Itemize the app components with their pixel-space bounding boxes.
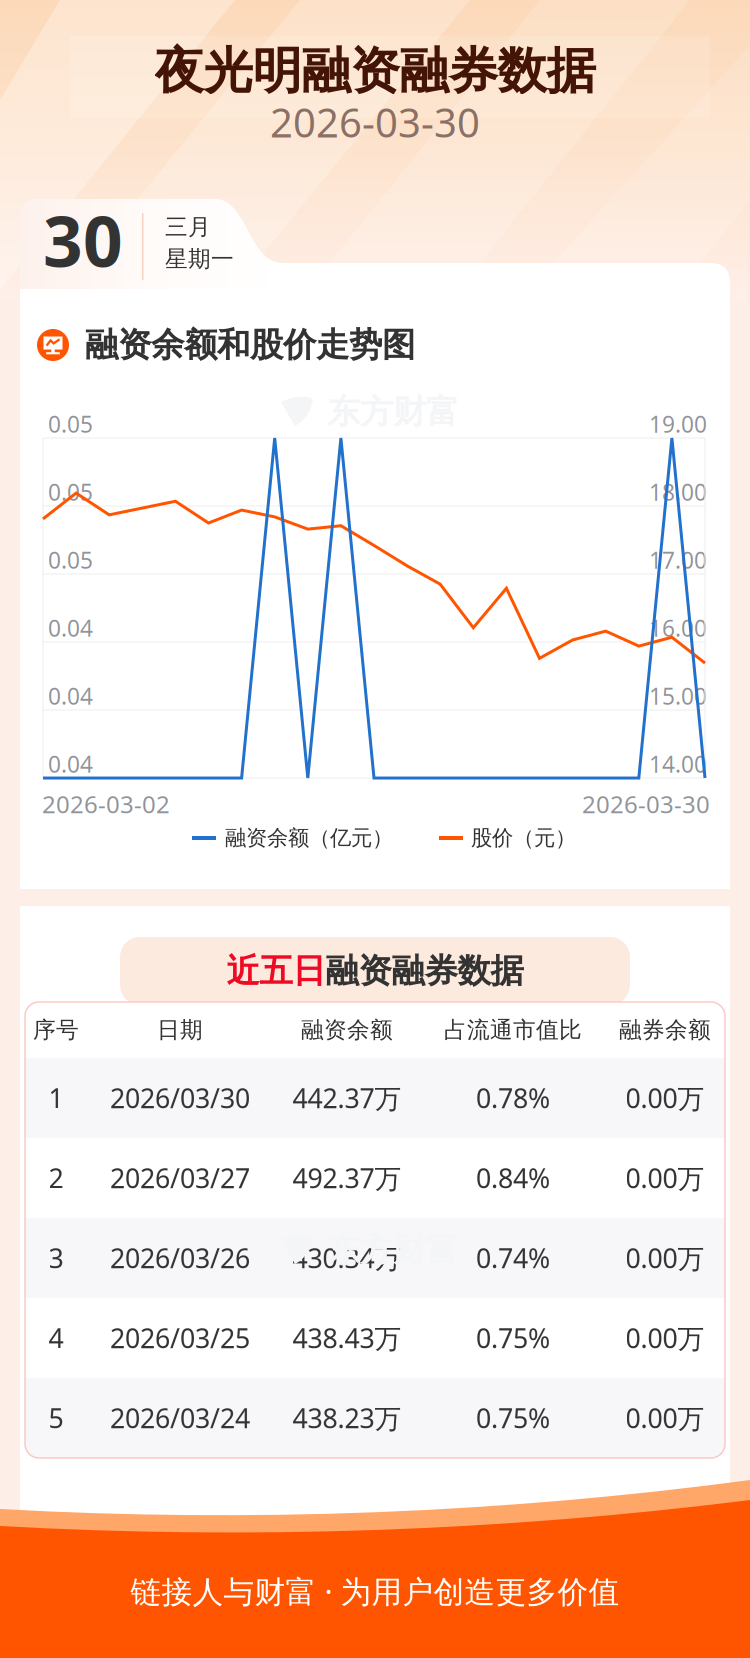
staticText: 0.78%: [476, 1080, 550, 1116]
staticText: 股价（元）: [471, 825, 576, 851]
staticText: 融券余额: [619, 1016, 711, 1044]
staticText: 融资融券数据: [325, 950, 523, 991]
staticText: 5: [48, 1400, 63, 1436]
staticText: 0.04: [48, 749, 93, 779]
staticText: 近五日: [226, 950, 325, 991]
staticText: 30: [43, 194, 123, 286]
staticText: 0.00万: [625, 1080, 704, 1116]
staticText: 序号: [33, 1016, 79, 1044]
staticText: 2026/03/27: [110, 1160, 250, 1196]
staticText: 442.37万: [292, 1080, 401, 1116]
staticText: 438.23万: [292, 1400, 401, 1436]
staticText: 15.00: [649, 681, 707, 711]
staticText: 438.43万: [292, 1320, 401, 1356]
staticText: 融资余额: [301, 1016, 393, 1044]
staticText: 2026-03-30: [270, 95, 480, 148]
staticText: 430.34万: [292, 1240, 401, 1276]
staticText: 2: [48, 1160, 63, 1196]
staticText: 0.04: [48, 613, 93, 643]
staticText: 0.00万: [625, 1160, 704, 1196]
staticText: 0.05: [48, 477, 93, 507]
staticText: 星期一: [165, 245, 234, 273]
staticText: 三月: [165, 213, 211, 241]
staticText: 3: [48, 1240, 63, 1276]
staticText: 17.00: [649, 545, 707, 575]
staticText: 2026/03/25: [110, 1320, 250, 1356]
staticText: 1: [48, 1080, 63, 1116]
staticText: 0.84%: [476, 1160, 550, 1196]
staticText: 0.75%: [476, 1400, 550, 1436]
staticText: 0.75%: [476, 1320, 550, 1356]
staticText: 18.00: [649, 477, 707, 507]
staticText: 日期: [157, 1016, 203, 1044]
staticText: 0.00万: [625, 1400, 704, 1436]
staticText: 2026-03-30: [582, 788, 710, 820]
staticText: 19.00: [649, 409, 707, 439]
staticText: 东方财富: [327, 1229, 459, 1270]
staticText: 0.05: [48, 545, 93, 575]
staticText: 492.37万: [292, 1160, 401, 1196]
staticText: 2026/03/30: [110, 1080, 250, 1116]
staticText: 融资余额（亿元）: [225, 825, 393, 851]
staticText: 0.74%: [476, 1240, 550, 1276]
staticText: 占流通市值比: [444, 1016, 582, 1044]
staticText: 14.00: [649, 749, 707, 779]
staticText: 2026/03/24: [110, 1400, 250, 1436]
staticText: 4: [48, 1320, 63, 1356]
staticText: 夜光明融资融券数据: [154, 41, 595, 101]
staticText: 2026/03/26: [110, 1240, 250, 1276]
staticText: 0.00万: [625, 1320, 704, 1356]
staticText: 0.04: [48, 681, 93, 711]
staticText: 链接人与财富 · 为用户创造更多价值: [130, 1571, 619, 1611]
staticText: 0.05: [48, 409, 93, 439]
staticText: 融资余额和股价走势图: [85, 324, 415, 365]
staticText: 16.00: [649, 613, 707, 643]
staticText: 0.00万: [625, 1240, 704, 1276]
staticText: 2026-03-02: [42, 788, 170, 820]
staticText: 东方财富: [327, 391, 459, 432]
